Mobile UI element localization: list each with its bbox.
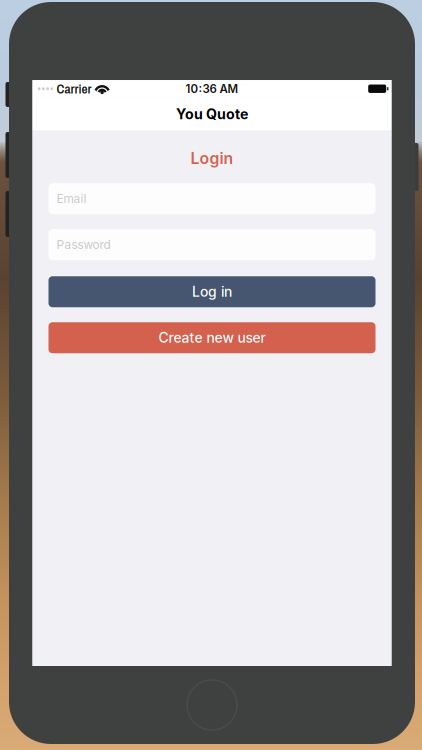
- staticText: Log in: [192, 283, 232, 300]
- staticText: Login: [190, 149, 233, 168]
- staticText: Password: [56, 238, 110, 252]
- button[interactable]: Create new user: [48, 322, 375, 353]
- staticText: Create new user: [158, 329, 265, 346]
- button[interactable]: Email: [48, 183, 375, 214]
- staticText: You Quote: [176, 105, 248, 122]
- staticText: 10:36 AM: [185, 82, 238, 96]
- staticText: Email: [56, 192, 86, 206]
- button[interactable]: Password: [48, 229, 375, 260]
- button[interactable]: Log in: [48, 276, 375, 307]
- staticText: Carrier: [56, 80, 91, 98]
